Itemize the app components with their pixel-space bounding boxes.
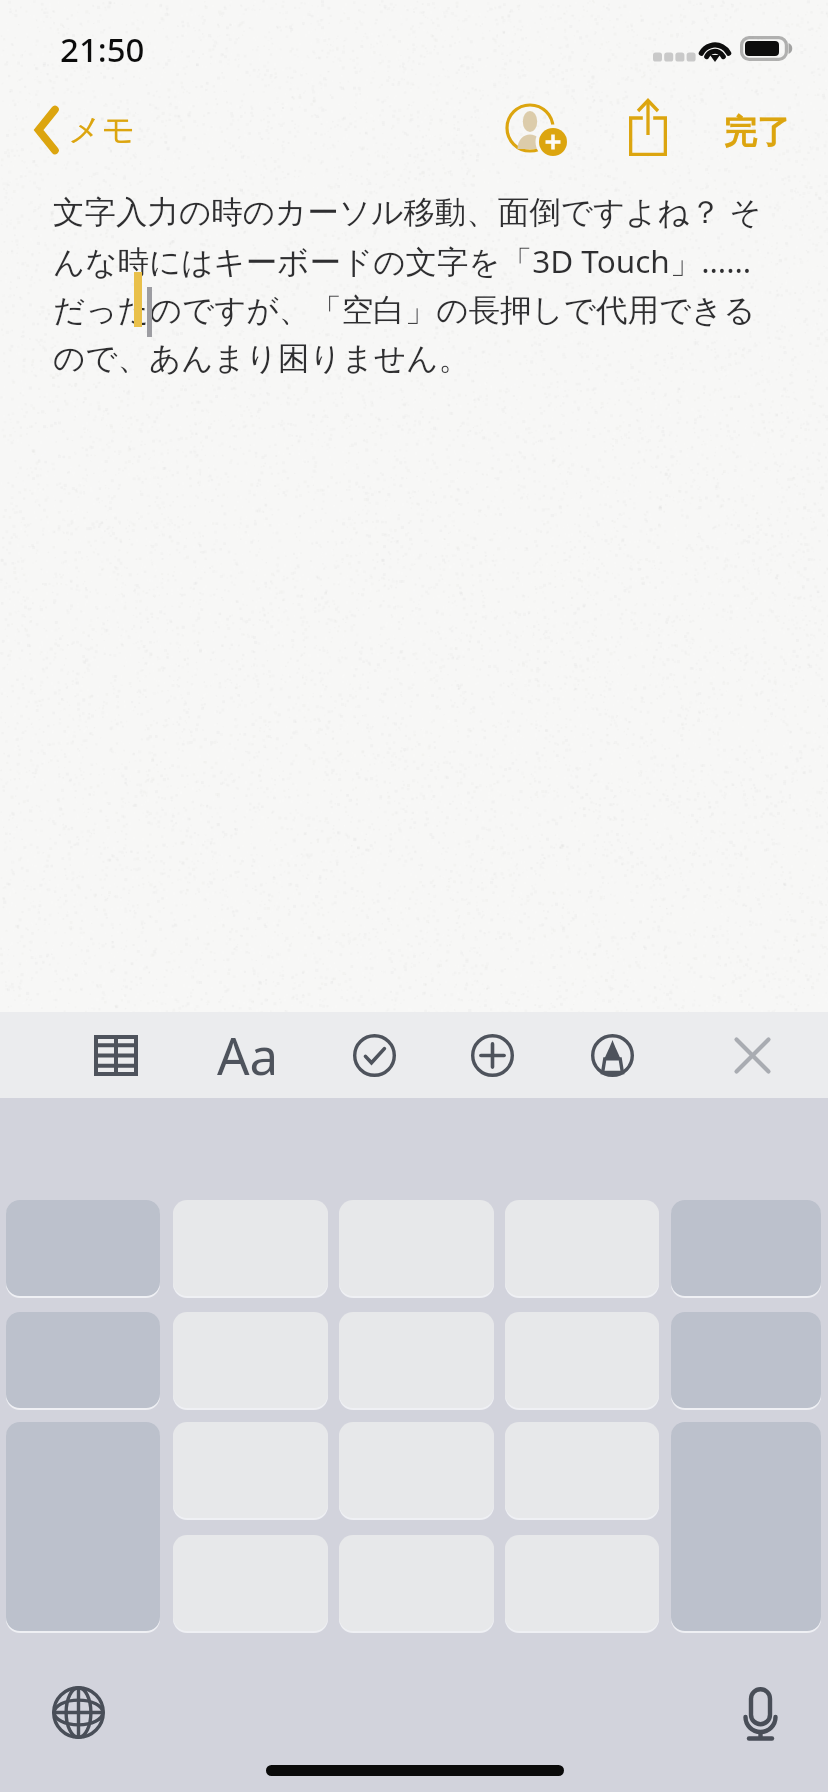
button[interactable]: Table bbox=[73, 1012, 159, 1098]
button[interactable]: 完了 bbox=[713, 92, 801, 172]
button[interactable]: Markup bbox=[569, 1012, 655, 1098]
button[interactable]: Checklist bbox=[331, 1012, 417, 1098]
button[interactable]: Hide keyboard bbox=[709, 1012, 795, 1098]
button[interactable]: メモ bbox=[24, 98, 152, 162]
button[interactable]: Add attachment bbox=[449, 1012, 535, 1098]
button[interactable]: Add people bbox=[496, 94, 582, 180]
staticText: 完了 bbox=[724, 111, 790, 153]
button[interactable]: Switch keyboard bbox=[34, 1668, 122, 1756]
button[interactable]: Share bbox=[605, 84, 691, 170]
button[interactable]: Dictation bbox=[716, 1670, 804, 1758]
staticText: メモ bbox=[68, 109, 136, 151]
button[interactable]: Text format bbox=[205, 1012, 291, 1098]
staticText: 21:50 bbox=[60, 27, 145, 72]
staticText: 文字入力の時のカーソル移動、面倒ですよね？ そ んな時にはキーボードの文字を「3… bbox=[53, 189, 762, 378]
staticText: Aa bbox=[217, 1020, 279, 1089]
